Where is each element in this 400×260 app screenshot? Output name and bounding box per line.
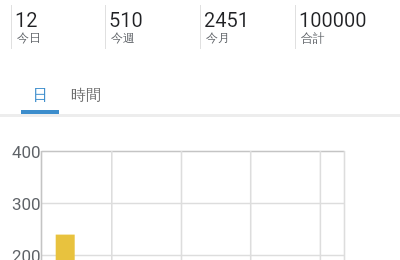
button[interactable]: 2451 bbox=[200, 5, 295, 49]
staticText: 合計 bbox=[301, 30, 325, 45]
staticText: 100000 bbox=[299, 8, 367, 31]
other: Daily steps bar chart bbox=[0, 0, 400, 260]
staticText: 200 bbox=[12, 246, 41, 260]
staticText: 今月 bbox=[206, 30, 230, 45]
button[interactable]: 100000 bbox=[295, 5, 390, 49]
button[interactable]: 510 bbox=[105, 5, 200, 49]
staticText: 今日 bbox=[17, 30, 41, 45]
button[interactable]: 日 bbox=[21, 79, 59, 111]
staticText: 今週 bbox=[111, 30, 135, 45]
button[interactable]: 時間 bbox=[59, 79, 112, 111]
staticText: 時間 bbox=[71, 86, 101, 105]
staticText: 400 bbox=[12, 142, 41, 162]
staticText: 510 bbox=[109, 8, 143, 31]
staticText: 300 bbox=[12, 194, 41, 214]
button[interactable]: 12 bbox=[11, 5, 105, 49]
staticText: 日 bbox=[33, 86, 48, 105]
staticText: 2451 bbox=[204, 8, 249, 31]
staticText: 12 bbox=[15, 8, 38, 31]
